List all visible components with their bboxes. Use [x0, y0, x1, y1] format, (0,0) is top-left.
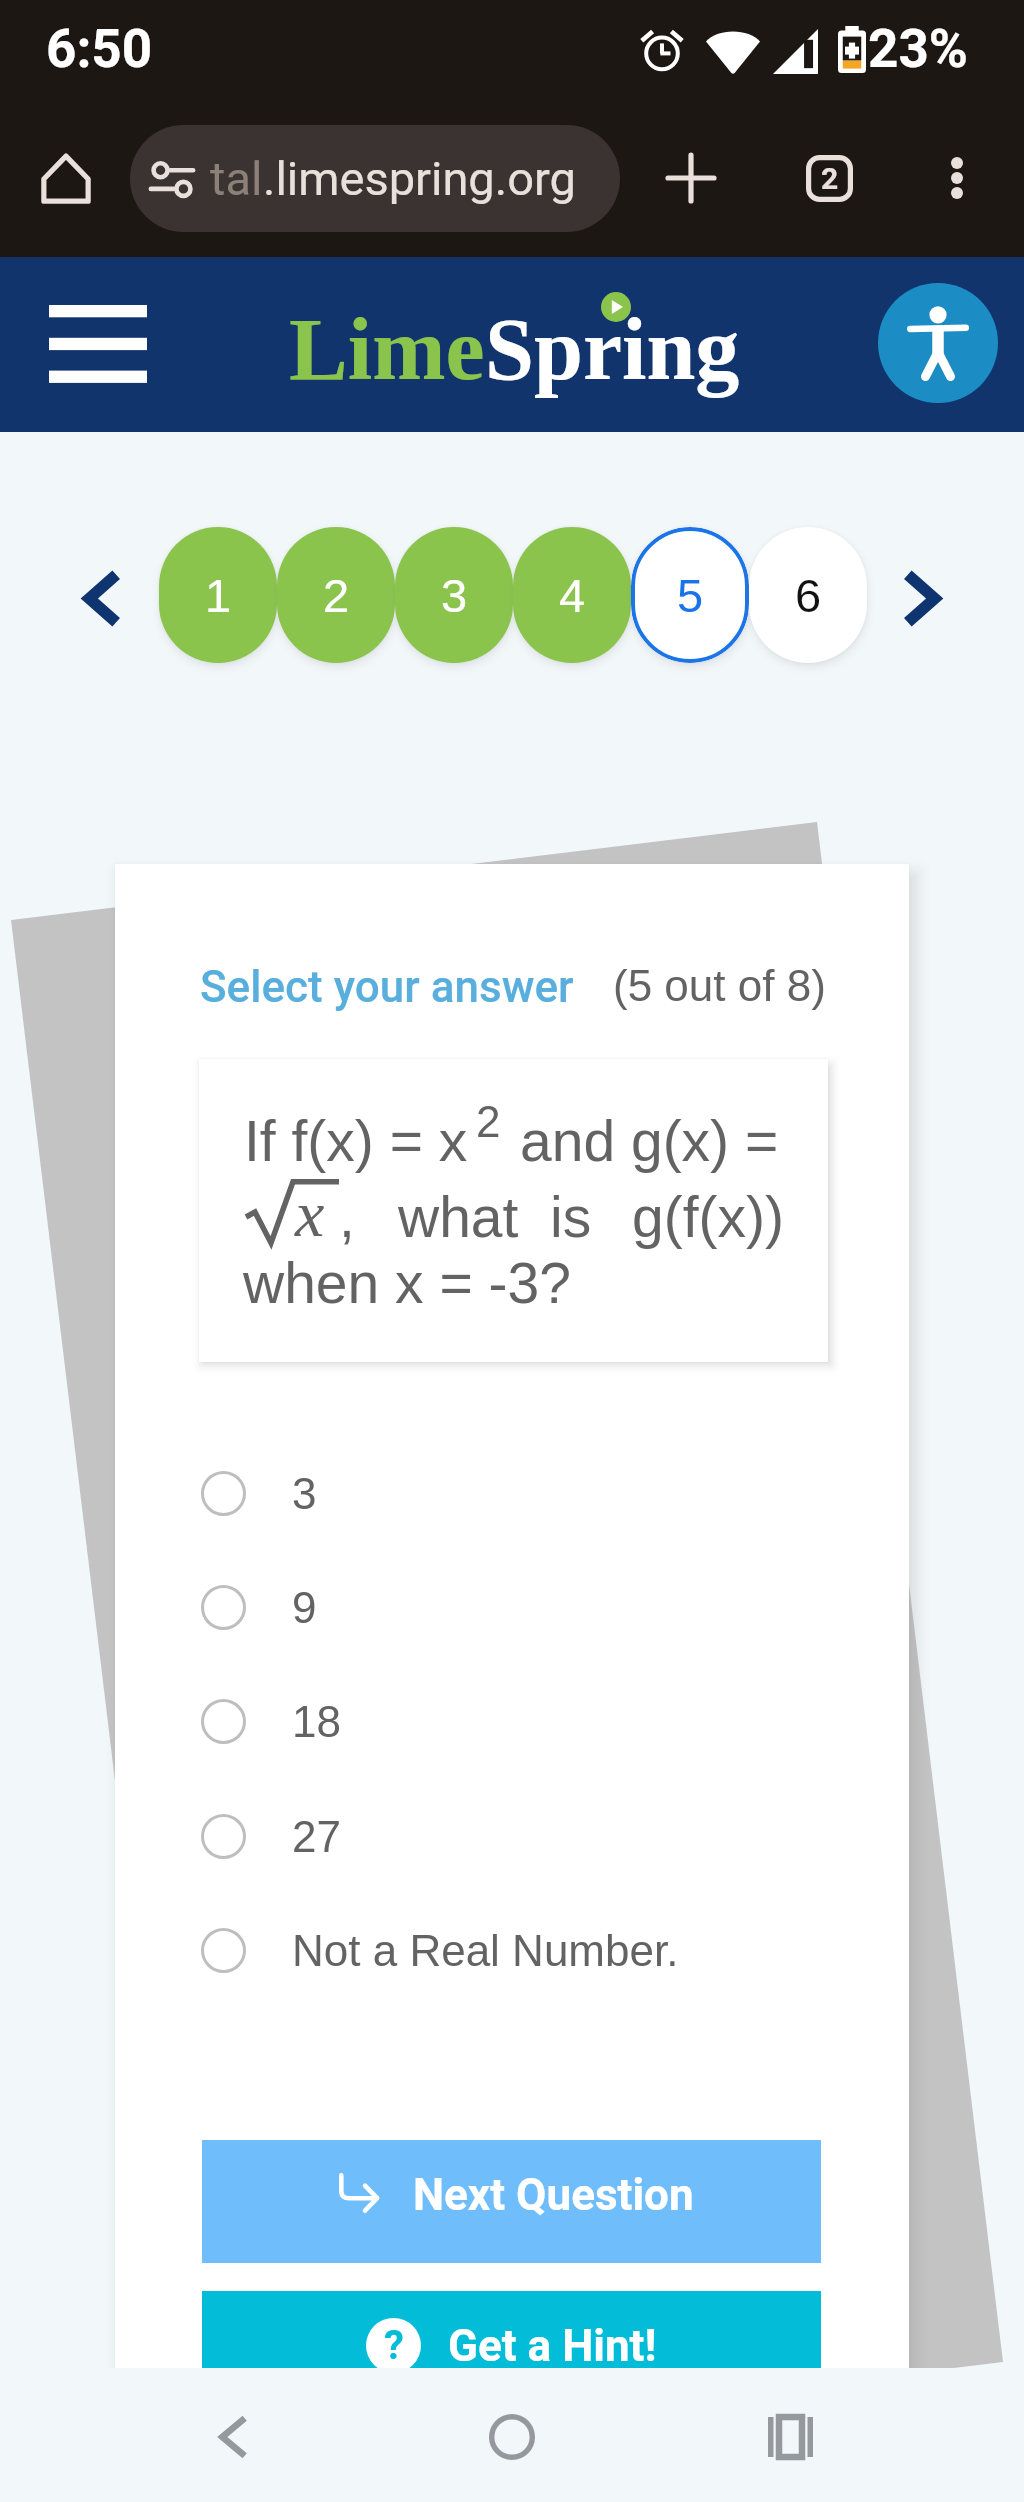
button[interactable]: Home: [6, 118, 126, 238]
staticText: x: [295, 1177, 325, 1250]
button[interactable]: 5: [631, 527, 749, 663]
staticText: 1: [205, 569, 232, 622]
button[interactable]: Next page: [884, 558, 960, 638]
staticText: 2: [821, 161, 839, 196]
button[interactable]: Not a Real Number.: [115, 1893, 909, 2007]
staticText: 9: [292, 1583, 317, 1632]
staticText: If f(x) = x: [244, 1109, 468, 1173]
button[interactable]: Tabs: [769, 118, 889, 238]
staticText: .limespring.org: [263, 151, 576, 206]
staticText: 23%: [868, 18, 968, 80]
button[interactable]: Back: [173, 2377, 293, 2497]
button[interactable]: tal: [130, 125, 620, 232]
staticText: 3: [292, 1469, 317, 1518]
staticText: 4: [559, 569, 586, 622]
staticText: 2: [323, 569, 350, 622]
button[interactable]: Previous page: [64, 558, 140, 638]
button[interactable]: 3: [115, 1436, 909, 1550]
button[interactable]: 18: [115, 1664, 909, 1778]
staticText: 6:50: [46, 18, 153, 80]
staticText: Select your answer: [200, 961, 574, 1013]
staticText: 6: [795, 569, 822, 622]
button[interactable]: Recent apps: [730, 2377, 850, 2497]
button[interactable]: ?: [202, 2291, 821, 2414]
button[interactable]: 27: [115, 1779, 909, 1893]
staticText: 5: [677, 569, 704, 622]
button[interactable]: Home: [452, 2377, 572, 2497]
staticText: Not a Real Number.: [292, 1926, 679, 1975]
staticText: and g(x) =: [520, 1109, 779, 1173]
staticText: g(f(x)): [632, 1185, 784, 1249]
button[interactable]: 9: [115, 1550, 909, 1664]
staticText: what: [398, 1185, 519, 1249]
staticText: 2: [476, 1097, 501, 1146]
staticText: 18: [292, 1697, 341, 1746]
button[interactable]: 6: [749, 527, 867, 663]
staticText: 27: [292, 1812, 341, 1861]
staticText: Get a Hint!: [448, 2320, 657, 2372]
staticText: tal: [210, 151, 263, 206]
button[interactable]: 4: [513, 527, 631, 663]
staticText: 3: [441, 569, 468, 622]
button[interactable]: 1: [159, 527, 277, 663]
staticText: ?: [384, 2322, 404, 2369]
staticText: when x = -3?: [243, 1251, 571, 1315]
staticText: (5 out of 8): [613, 961, 826, 1010]
staticText: is: [550, 1185, 592, 1249]
button[interactable]: Accessibility options: [878, 283, 998, 403]
button[interactable]: New tab: [631, 118, 751, 238]
staticText: Spring: [485, 301, 740, 398]
button[interactable]: Next Question: [202, 2140, 821, 2263]
button[interactable]: 3: [395, 527, 513, 663]
button[interactable]: 2: [277, 527, 395, 663]
button[interactable]: More options: [897, 118, 1017, 238]
button[interactable]: Menu: [19, 273, 177, 415]
staticText: ,: [339, 1185, 355, 1249]
staticText: Next Question: [413, 2169, 694, 2221]
staticText: Lime: [289, 301, 485, 398]
